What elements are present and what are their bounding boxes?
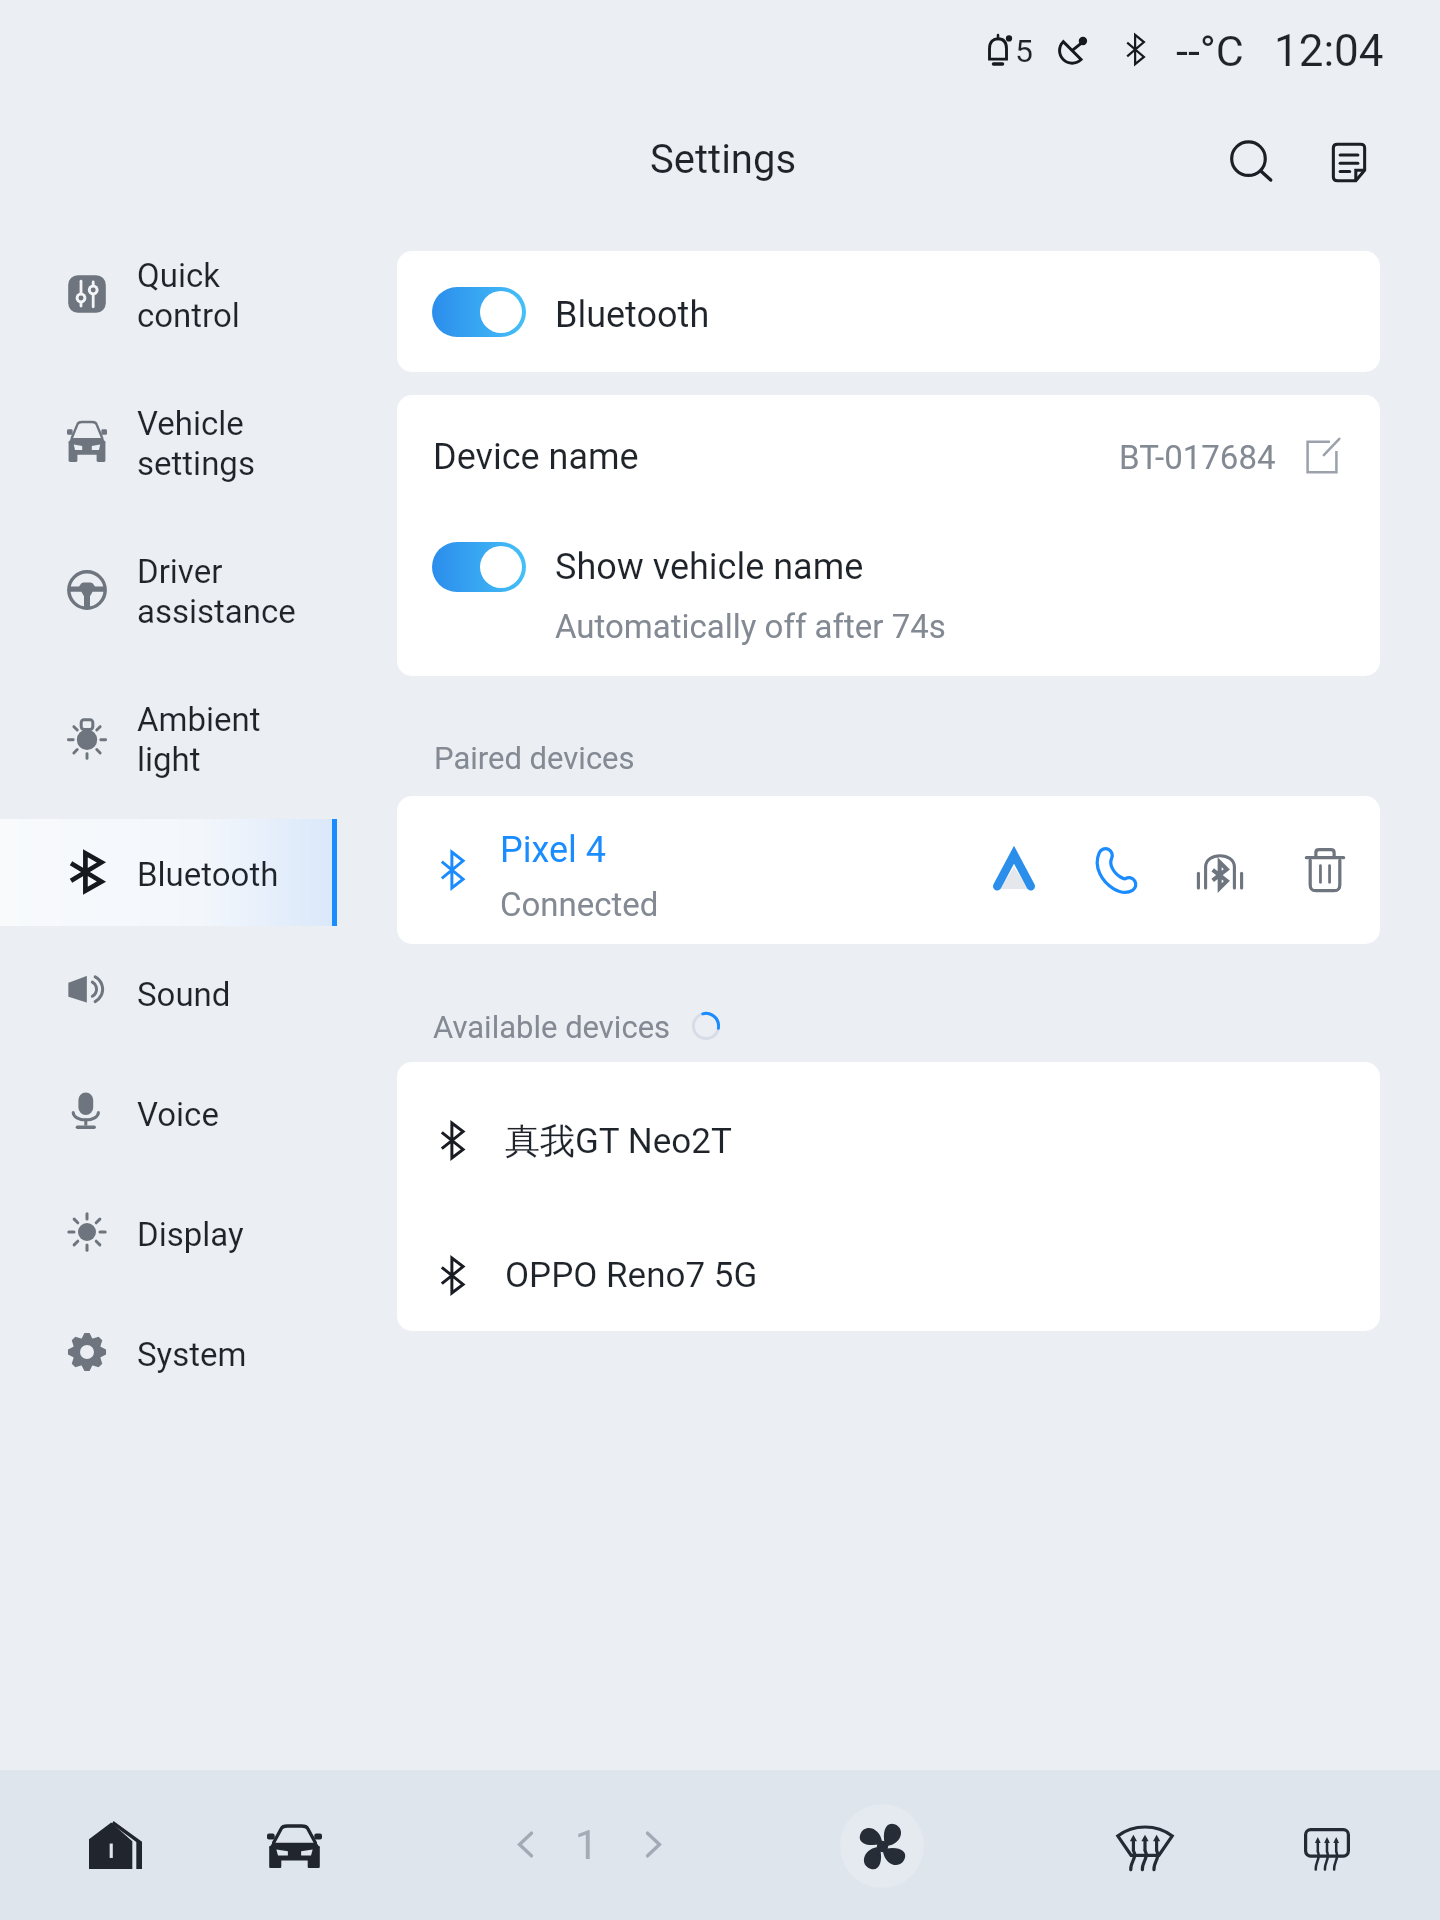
staticText: Show vehicle name: [555, 546, 864, 588]
button[interactable]: Voice: [0, 1052, 397, 1172]
button[interactable]: Front defrost: [1095, 1797, 1195, 1897]
staticText: Driver assistance: [137, 552, 296, 632]
staticText: Sound: [137, 975, 231, 1014]
staticText: Bluetooth: [137, 855, 279, 894]
staticText: 真我GT Neo2T: [505, 1119, 732, 1163]
button[interactable]: Bluetooth: [0, 812, 397, 932]
staticText: Automatically off after 74s: [555, 607, 946, 646]
button[interactable]: Toggle: [432, 517, 1380, 617]
button[interactable]: Delete: [1280, 796, 1370, 944]
button[interactable]: Previous page: [475, 1794, 575, 1894]
button[interactable]: Home: [67, 1795, 167, 1895]
button[interactable]: Vehicle settings: [0, 368, 397, 516]
staticText: Ambient light: [137, 700, 261, 780]
button[interactable]: System: [0, 1292, 397, 1412]
button[interactable]: Ambient light: [0, 664, 397, 812]
button[interactable]: Call: [1071, 796, 1161, 944]
button[interactable]: Display: [0, 1172, 397, 1292]
button[interactable]: Toggle: [432, 251, 1380, 372]
staticText: Quick control: [137, 256, 240, 336]
staticText: Available devices: [433, 1009, 671, 1045]
staticText: Connected: [500, 885, 659, 924]
staticText: Bluetooth: [555, 294, 710, 336]
button[interactable]: Toggle: [432, 542, 526, 592]
button[interactable]: Rear defrost: [1277, 1799, 1377, 1899]
staticText: --°C: [1176, 26, 1244, 76]
button[interactable]: Navigation: [969, 796, 1059, 944]
button[interactable]: Media: [1175, 796, 1265, 944]
staticText: Device name: [433, 436, 639, 478]
staticText: Display: [137, 1215, 244, 1254]
staticText: OPPO Reno7 5G: [505, 1255, 758, 1296]
staticText: BT-017684: [1119, 438, 1276, 477]
button[interactable]: Driver assistance: [0, 516, 397, 664]
staticText: System: [137, 1335, 247, 1374]
button[interactable]: Search: [1212, 123, 1290, 201]
button[interactable]: Next page: [603, 1794, 703, 1894]
button[interactable]: Sound: [0, 932, 397, 1052]
button[interactable]: Device name: [433, 395, 1340, 519]
staticText: Vehicle settings: [137, 404, 255, 484]
staticText: 1: [575, 1821, 599, 1869]
staticText: Voice: [137, 1095, 219, 1134]
staticText: 5: [1015, 32, 1033, 70]
button[interactable]: Toggle: [432, 287, 526, 337]
button[interactable]: Quick control: [0, 220, 397, 368]
button[interactable]: Fan: [840, 1804, 924, 1888]
staticText: Settings: [650, 136, 797, 183]
button[interactable]: Vehicle: [244, 1797, 344, 1897]
staticText: Paired devices: [434, 740, 635, 776]
button[interactable]: 真我GT Neo2T: [439, 1071, 1380, 1210]
staticText: Pixel 4: [500, 829, 606, 871]
button[interactable]: OPPO Reno7 5G: [439, 1206, 1380, 1331]
button[interactable]: Notes: [1310, 123, 1388, 201]
staticText: 12:04: [1274, 25, 1384, 77]
button[interactable]: Pixel 4: [439, 796, 1380, 944]
